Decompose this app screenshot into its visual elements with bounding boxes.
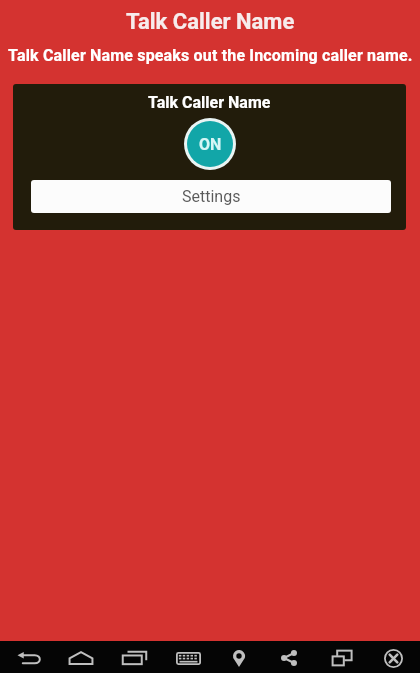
button[interactable]: ON: [187, 121, 233, 167]
button[interactable]: Recent apps: [108, 641, 160, 673]
button[interactable]: Keyboard: [162, 641, 214, 673]
staticText: Settings: [182, 187, 241, 206]
staticText: Talk Caller Name speaks out the Incoming…: [8, 46, 413, 65]
button[interactable]: Multi window: [316, 641, 368, 673]
staticText: Talk Caller Name: [126, 9, 295, 35]
button[interactable]: Back: [3, 641, 55, 673]
button[interactable]: Close: [367, 641, 419, 673]
button[interactable]: Location: [213, 641, 265, 673]
button[interactable]: Share: [263, 641, 315, 673]
button[interactable]: Settings: [31, 180, 391, 213]
button[interactable]: Home: [55, 641, 107, 673]
staticText: ON: [199, 135, 222, 154]
staticText: Talk Caller Name: [148, 93, 271, 112]
